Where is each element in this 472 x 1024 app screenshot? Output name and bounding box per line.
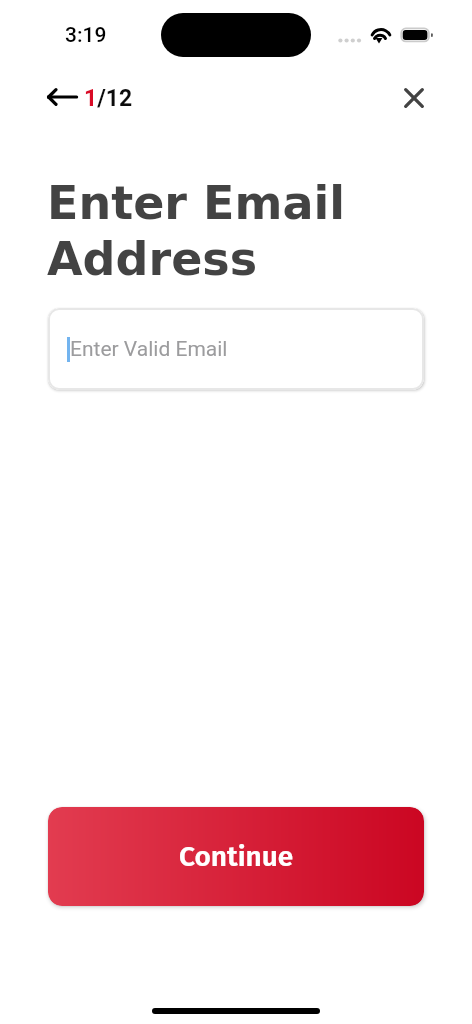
staticText: Enter Valid Email — [70, 337, 228, 362]
button[interactable]: Continue — [48, 807, 424, 906]
staticText: 3:19 — [65, 23, 107, 48]
button[interactable]: Back — [44, 83, 133, 110]
staticText: Enter Email Address — [47, 176, 345, 286]
staticText: 1/12 — [84, 85, 133, 112]
button[interactable]: Enter Valid Email — [48, 308, 424, 390]
other: Back — [44, 84, 76, 110]
button[interactable]: Close — [399, 83, 429, 113]
staticText: Continue — [179, 840, 294, 874]
